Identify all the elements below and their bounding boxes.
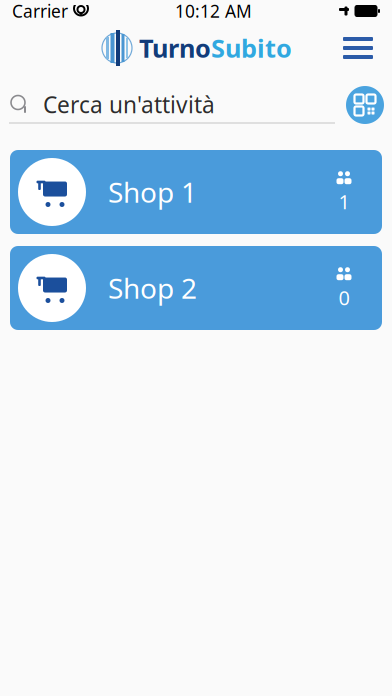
staticText: 1 — [338, 188, 349, 215]
staticText: 0 — [338, 284, 349, 311]
staticText: Shop 2 — [108, 269, 197, 307]
button[interactable]: Shop 1 — [10, 150, 382, 234]
staticText: Subito — [211, 31, 292, 65]
button[interactable]: Menu — [336, 26, 380, 70]
staticText: Carrier — [12, 0, 68, 22]
staticText: Cerca un'attività — [43, 89, 215, 119]
staticText: Shop 1 — [108, 173, 197, 211]
staticText: 10:12 AM — [175, 0, 252, 22]
button[interactable]: Scan QR code — [343, 83, 387, 127]
button[interactable]: Shop 2 — [10, 246, 382, 330]
staticText: Turno — [139, 31, 211, 65]
